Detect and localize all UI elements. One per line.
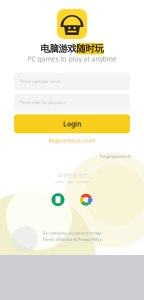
staticText: Other login methods <box>54 179 89 184</box>
button[interactable]: Sign in with WeChat <box>51 193 64 206</box>
staticText: 电脑游戏 <box>40 43 76 54</box>
staticText: By continuing, you agree to mingyi <box>42 230 101 235</box>
staticText: 其他登录方式 <box>57 172 87 179</box>
button[interactable]: Sign in with Google <box>79 193 92 206</box>
staticText: Please enter the password <box>20 100 65 105</box>
staticText: Please input your email <box>20 79 60 84</box>
button[interactable]: Forget password? <box>100 152 131 160</box>
button[interactable]: Registered account <box>0 136 144 144</box>
button[interactable]: Login <box>14 114 130 133</box>
staticText: 随时玩 <box>76 43 103 54</box>
staticText: Registered account <box>48 137 95 144</box>
staticText: PC games to play at anytime <box>27 54 116 63</box>
button[interactable]: Terms of Service & Privacy Policy <box>42 236 101 242</box>
staticText: Login <box>63 119 81 128</box>
staticText: Terms of Service & Privacy Policy <box>42 236 101 242</box>
staticText: Forget password? <box>100 154 131 159</box>
